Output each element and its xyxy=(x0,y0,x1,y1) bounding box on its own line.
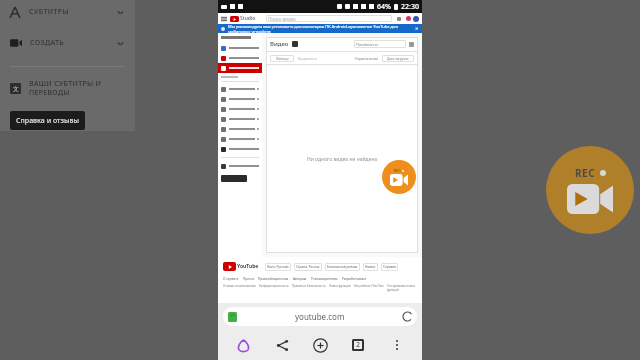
staticText: Дата загрузки xyxy=(387,57,409,61)
button[interactable]: More options xyxy=(384,332,410,358)
staticText: Ограничения xyxy=(355,56,378,61)
staticText: Ни одного видео не найдено xyxy=(307,156,378,163)
button[interactable]: youtube.com xyxy=(223,307,417,326)
staticText: Авторам xyxy=(293,277,307,281)
staticText: Новые функции xyxy=(329,284,351,288)
button[interactable]: Плейлисты xyxy=(354,40,406,48)
button[interactable]: Menu xyxy=(221,16,227,22)
button[interactable] xyxy=(218,104,262,114)
staticText: Язык: Русский xyxy=(267,265,289,269)
staticText: Новые xyxy=(365,265,376,269)
staticText: Условия использования xyxy=(223,284,256,288)
button[interactable] xyxy=(218,94,262,104)
staticText: REC xyxy=(394,168,401,173)
staticText: YouTube xyxy=(237,263,259,270)
staticText: Справка xyxy=(383,265,396,269)
staticText: Видимость xyxy=(298,56,317,61)
button[interactable]: Tabs xyxy=(345,332,371,358)
staticText: Тестирование новых функций xyxy=(387,284,417,292)
button[interactable]: Безопасный режим xyxy=(325,263,360,271)
staticText: 22:30 xyxy=(401,2,419,12)
button[interactable]: Record video xyxy=(382,160,416,194)
staticText: Видео xyxy=(270,40,289,48)
button[interactable] xyxy=(218,114,262,124)
button[interactable] xyxy=(218,161,262,171)
staticText: СУБТИТРЫ xyxy=(29,7,70,17)
staticText: СОЗДАТЬ xyxy=(30,38,65,48)
staticText: ВАШИ СУБТИТРЫ И ПЕРЕВОДЫ xyxy=(29,79,102,97)
button[interactable]: Новые xyxy=(363,263,378,271)
staticText: REC xyxy=(575,166,596,180)
staticText: Studio xyxy=(240,15,256,22)
staticText: 2 xyxy=(356,340,361,350)
staticText: Пресса xyxy=(243,277,254,281)
button[interactable] xyxy=(218,134,262,144)
staticText: 文 xyxy=(13,85,19,93)
staticText: Фильтр xyxy=(276,56,289,61)
button[interactable] xyxy=(218,43,262,53)
staticText: Рекламодателям xyxy=(311,277,338,281)
staticText: Как работает YouTube xyxy=(354,284,384,288)
staticText: Справка и отзывы xyxy=(16,116,79,126)
button[interactable]: 文 xyxy=(10,79,125,97)
staticText: Правила и безопасность xyxy=(292,284,326,288)
staticText: Правообладателям xyxy=(258,277,289,281)
button[interactable] xyxy=(218,84,262,94)
staticText: Конфиденциальность xyxy=(259,284,289,288)
button[interactable] xyxy=(218,63,262,73)
button[interactable]: Фильтр xyxy=(270,55,294,62)
button[interactable] xyxy=(218,124,262,134)
button[interactable]: Дата загрузки xyxy=(382,55,414,62)
button[interactable]: Страна: Россия xyxy=(294,263,322,271)
button[interactable]: Язык: Русский xyxy=(265,263,291,271)
button[interactable]: Справка и отзывы xyxy=(10,111,85,130)
button[interactable]: Home xyxy=(230,332,256,358)
button[interactable]: СОЗДАТЬ xyxy=(10,31,125,55)
staticText: О сервисе xyxy=(223,277,239,281)
button[interactable] xyxy=(221,175,247,182)
staticText: ✕ xyxy=(415,26,419,31)
staticText: youtube.com xyxy=(295,311,345,322)
button[interactable] xyxy=(218,144,262,154)
staticText: 64% xyxy=(377,2,391,12)
button[interactable]: СУБТИТРЫ xyxy=(10,0,125,24)
staticText: Страна: Россия xyxy=(296,265,320,269)
other: Screen recorder xyxy=(546,146,634,234)
button[interactable]: Reload xyxy=(403,312,412,321)
staticText: Мы рекомендуем вам установить для монито… xyxy=(228,24,412,33)
button[interactable]: Share xyxy=(269,332,295,358)
button[interactable]: Справка xyxy=(381,263,398,271)
staticText: Разработчикам xyxy=(342,277,366,281)
button[interactable]: New tab xyxy=(307,332,333,358)
staticText: Плейлисты xyxy=(356,42,378,47)
button[interactable] xyxy=(218,53,262,63)
staticText: Безопасный режим xyxy=(327,265,358,269)
staticText: Поиск видео xyxy=(268,16,296,22)
